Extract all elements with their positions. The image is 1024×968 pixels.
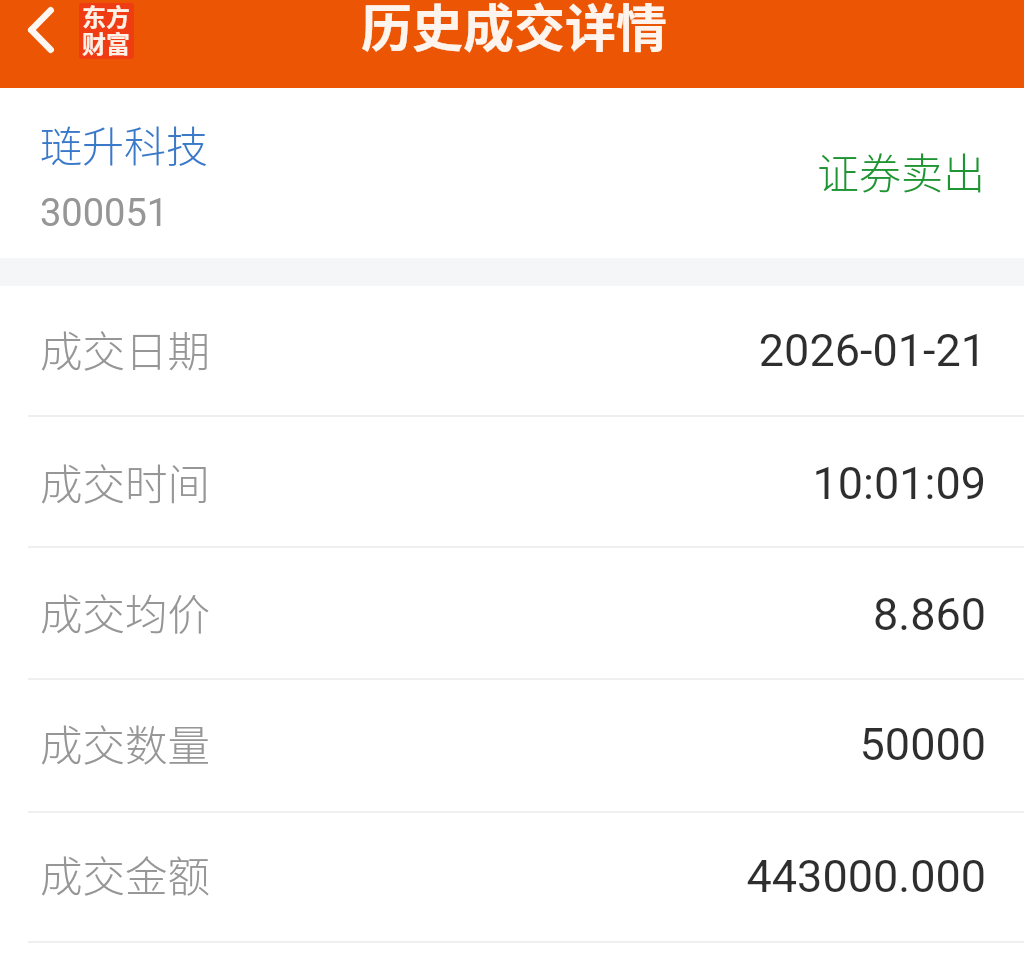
staticText: 300051: [40, 191, 169, 236]
staticText: 琏升科技: [40, 113, 209, 174]
staticText: 8.860: [872, 588, 986, 641]
staticText: 成交金额: [40, 843, 211, 905]
button[interactable]: 成交金额: [0, 813, 1024, 943]
staticText: 东方: [82, 3, 130, 33]
button[interactable]: 成交数量: [0, 680, 1024, 813]
staticText: 成交数量: [40, 712, 211, 774]
button[interactable]: 成交均价: [0, 548, 1024, 680]
staticText: 50000: [859, 718, 986, 771]
button[interactable]: 琏升科技: [20, 101, 340, 231]
button[interactable]: 成交时间: [0, 417, 1024, 548]
button[interactable]: 成交日期: [0, 286, 1024, 417]
staticText: 10:01:09: [812, 457, 986, 510]
button[interactable]: East Money: [79, 3, 134, 59]
staticText: 证券卖出: [817, 140, 986, 201]
staticText: 历史成交详情: [361, 0, 668, 62]
staticText: 财富: [82, 25, 130, 59]
staticText: 2026-01-21: [758, 324, 986, 377]
staticText: 成交时间: [40, 451, 211, 513]
staticText: 成交均价: [40, 581, 211, 643]
staticText: 成交日期: [40, 318, 211, 380]
button[interactable]: Back: [0, 0, 76, 88]
staticText: 443000.000: [746, 850, 986, 903]
